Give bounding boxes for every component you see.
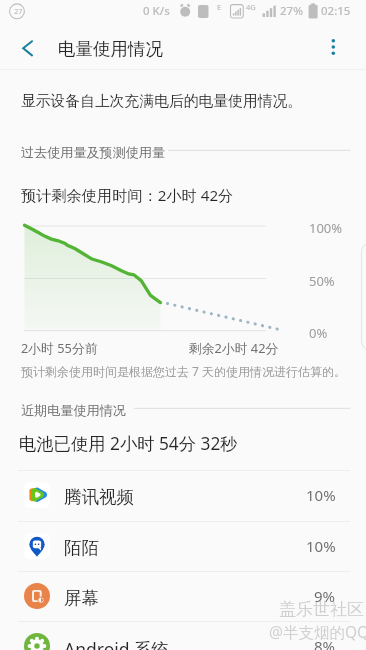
staticText: 50% — [309, 272, 335, 290]
staticText: 0 K/s — [143, 3, 170, 19]
button[interactable]: 屏幕 — [0, 571, 366, 621]
staticText: 电量使用情况 — [58, 38, 163, 60]
staticText: 10% — [306, 536, 336, 556]
staticText: @半支烟的QQ — [269, 621, 366, 642]
staticText: E — [217, 2, 222, 12]
staticText: 显示设备自上次充满电后的电量使用情况。 — [21, 92, 303, 111]
staticText: 预计剩余使用时间：2小时 42分 — [21, 185, 234, 206]
staticText: 过去使用量及预测使用量 — [21, 144, 166, 161]
staticText: 预计剩余使用时间是根据您过去 7 天的使用情况进行估算的。 — [21, 363, 347, 379]
staticText: 27 — [14, 6, 23, 16]
staticText: 近期电量使用情况 — [21, 402, 126, 419]
staticText: 2小时 55分前 — [21, 339, 98, 356]
staticText: 屏幕 — [64, 587, 99, 609]
staticText: 9% — [314, 586, 336, 606]
button[interactable]: 腾讯视频 — [0, 470, 366, 520]
staticText: 剩余2小时 42分 — [189, 339, 279, 356]
staticText: 电池已使用 2小时 54分 32秒 — [19, 432, 238, 456]
staticText: 腾讯视频 — [64, 486, 134, 508]
staticText: 0% — [309, 324, 328, 342]
staticText: Android 系统 — [64, 637, 170, 650]
staticText: 27% — [280, 3, 303, 19]
staticText: 盖乐世社区 — [279, 599, 364, 620]
staticText: 10% — [306, 485, 336, 505]
staticText: 100% — [309, 219, 343, 237]
staticText: 4G — [246, 2, 256, 12]
staticText: 02:15 — [321, 3, 351, 19]
staticText: 8% — [314, 636, 336, 650]
button[interactable]: 陌陌 — [0, 521, 366, 571]
button[interactable]: Android 系统 — [0, 621, 366, 650]
staticText: 陌陌 — [64, 537, 99, 559]
button[interactable]: More options — [311, 25, 355, 69]
button[interactable]: Back — [4, 25, 48, 69]
